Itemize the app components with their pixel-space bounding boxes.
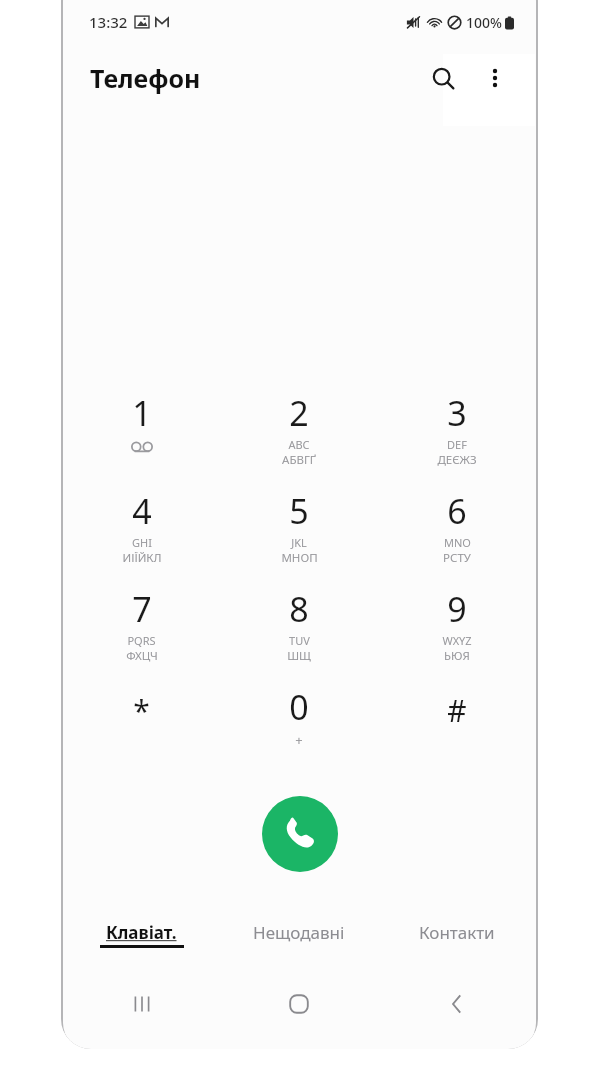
button[interactable]: 1: [63, 382, 220, 480]
staticText: 100%: [466, 13, 502, 32]
staticText: 1: [132, 390, 152, 436]
staticText: 2: [289, 390, 309, 436]
staticText: PQRS: [127, 633, 156, 648]
button[interactable]: 4: [63, 480, 220, 578]
button[interactable]: #: [378, 676, 536, 774]
staticText: JKL: [291, 535, 307, 550]
staticText: АБВГҐ: [282, 452, 316, 468]
staticText: +: [295, 731, 303, 749]
button[interactable]: Нещодавні: [220, 910, 378, 954]
button[interactable]: Search: [420, 55, 466, 101]
staticText: 5: [289, 488, 309, 534]
staticText: Телефон: [90, 61, 201, 95]
button[interactable]: 2: [220, 382, 378, 480]
staticText: ABC: [288, 437, 310, 452]
button[interactable]: 5: [220, 480, 378, 578]
staticText: ИІЇЙКЛ: [122, 550, 162, 566]
staticText: Нещодавні: [253, 921, 345, 944]
staticText: РСТУ: [443, 550, 471, 566]
staticText: 7: [132, 586, 152, 632]
button[interactable]: Back: [378, 976, 536, 1032]
staticText: МНОП: [281, 550, 318, 566]
staticText: 0: [289, 684, 309, 730]
button[interactable]: 0: [220, 676, 378, 774]
staticText: 3: [447, 390, 467, 436]
button[interactable]: Home: [220, 976, 378, 1032]
staticText: 9: [447, 586, 467, 632]
staticText: TUV: [289, 633, 310, 648]
button[interactable]: More options: [472, 55, 518, 101]
button[interactable]: 7: [63, 578, 220, 676]
staticText: ФХЦЧ: [126, 648, 158, 664]
staticText: ДЕЄЖЗ: [437, 452, 477, 468]
button[interactable]: Контакти: [378, 910, 536, 954]
staticText: Контакти: [419, 921, 495, 944]
staticText: 4: [132, 488, 152, 534]
button[interactable]: Call: [262, 796, 338, 872]
button[interactable]: *: [63, 676, 220, 774]
staticText: GHI: [132, 535, 152, 550]
staticText: *: [133, 690, 150, 731]
button[interactable]: 3: [378, 382, 536, 480]
staticText: 8: [289, 586, 309, 632]
staticText: WXYZ: [442, 633, 472, 648]
button[interactable]: 8: [220, 578, 378, 676]
staticText: #: [447, 690, 467, 731]
staticText: 6: [447, 488, 467, 534]
staticText: 13:32: [89, 12, 128, 32]
staticText: ЬЮЯ: [444, 648, 470, 664]
button[interactable]: Recents: [63, 976, 220, 1032]
staticText: MNO: [444, 535, 471, 550]
staticText: Клавіат.: [106, 921, 177, 944]
staticText: ШЩ: [287, 648, 311, 664]
button[interactable]: 9: [378, 578, 536, 676]
button[interactable]: 6: [378, 480, 536, 578]
button[interactable]: Клавіат.: [63, 910, 220, 954]
staticText: DEF: [447, 437, 467, 452]
